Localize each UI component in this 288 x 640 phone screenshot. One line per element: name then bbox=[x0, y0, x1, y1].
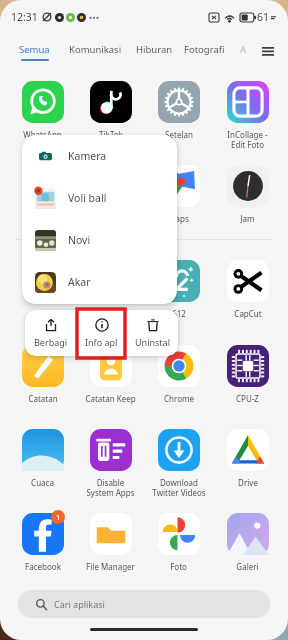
button[interactable]: Uninstal bbox=[127, 310, 178, 356]
staticText: CPU-Z bbox=[236, 393, 259, 404]
staticText: 12:31 bbox=[11, 10, 38, 24]
button[interactable] bbox=[8, 161, 77, 237]
staticText: Chrome bbox=[164, 393, 194, 404]
staticText: File Manager bbox=[86, 561, 135, 572]
staticText: WhatsApp bbox=[23, 129, 62, 140]
staticText: Berbagi bbox=[34, 336, 68, 348]
button[interactable]: InCollage - Edit Foto bbox=[213, 77, 282, 153]
staticText: Facebook bbox=[25, 561, 61, 572]
button[interactable]: Cuaca bbox=[8, 425, 77, 501]
staticText: 1 bbox=[56, 512, 61, 522]
button[interactable]: TikTok bbox=[76, 77, 145, 153]
button[interactable]: Menu bbox=[253, 37, 282, 66]
button[interactable]: 612 bbox=[144, 256, 213, 332]
staticText: Download Twitter Videos bbox=[152, 477, 206, 498]
staticText: Catatan bbox=[28, 393, 58, 404]
button[interactable]: Setelan bbox=[144, 77, 213, 153]
staticText: Disable System Apps bbox=[86, 477, 135, 498]
button[interactable] bbox=[76, 256, 145, 332]
staticText: TikTok bbox=[99, 129, 123, 140]
staticText: Info apl bbox=[85, 336, 118, 348]
button[interactable]: Kamera bbox=[22, 135, 177, 177]
staticText: Maps bbox=[168, 213, 189, 224]
button[interactable] bbox=[76, 161, 145, 237]
staticText: InCollage - Edit Foto bbox=[227, 129, 268, 150]
button[interactable]: Fotografi bbox=[184, 43, 225, 56]
button[interactable]: WhatsApp bbox=[8, 77, 77, 153]
button[interactable]: Semua bbox=[19, 43, 50, 61]
button[interactable]: Catatan bbox=[8, 341, 77, 417]
button[interactable]: CPU-Z bbox=[213, 341, 282, 417]
staticText: Jam bbox=[240, 213, 255, 224]
button[interactable]: Hiburan bbox=[136, 43, 173, 56]
button[interactable]: Voli ball bbox=[22, 177, 177, 219]
button[interactable]: Novi bbox=[22, 219, 177, 261]
button[interactable]: Akar bbox=[22, 261, 177, 303]
staticText: Novi bbox=[68, 233, 91, 247]
button[interactable]: Berbagi bbox=[25, 310, 76, 356]
button[interactable]: Komunikasi bbox=[69, 43, 122, 56]
staticText: Uninstal bbox=[135, 336, 170, 348]
staticText: Catatan Keep bbox=[85, 393, 136, 404]
staticText: Drive bbox=[238, 477, 258, 488]
button[interactable]: File Manager bbox=[76, 509, 145, 585]
button[interactable] bbox=[8, 256, 77, 332]
button[interactable]: 1 bbox=[8, 509, 77, 585]
staticText: Cuaca bbox=[31, 477, 54, 488]
staticText: CapCut bbox=[234, 308, 262, 319]
staticText: A bbox=[240, 43, 247, 56]
staticText: Voli ball bbox=[68, 191, 107, 205]
staticText: Setelan bbox=[165, 129, 193, 140]
button[interactable]: Chrome bbox=[144, 341, 213, 417]
button[interactable]: Galeri bbox=[213, 509, 282, 585]
staticText: Galeri bbox=[236, 561, 259, 572]
button[interactable]: Foto bbox=[144, 509, 213, 585]
button[interactable]: Jam bbox=[213, 161, 282, 237]
staticText: Semua bbox=[19, 43, 50, 56]
staticText: 612 bbox=[172, 308, 186, 319]
button[interactable]: Info apl bbox=[76, 310, 127, 356]
staticText: Foto bbox=[170, 561, 187, 572]
button[interactable]: Cari aplikasi bbox=[18, 590, 270, 618]
button[interactable]: Download Twitter Videos bbox=[144, 425, 213, 501]
staticText: Akar bbox=[68, 275, 91, 289]
button[interactable]: Catatan Keep bbox=[76, 341, 145, 417]
staticText: 61 bbox=[257, 10, 270, 24]
button[interactable]: Disable System Apps bbox=[76, 425, 145, 501]
button[interactable]: CapCut bbox=[213, 256, 282, 332]
button[interactable]: Maps bbox=[144, 161, 213, 237]
staticText: Cari aplikasi bbox=[54, 598, 105, 610]
button[interactable]: Drive bbox=[213, 425, 282, 501]
staticText: Kamera bbox=[68, 149, 107, 163]
